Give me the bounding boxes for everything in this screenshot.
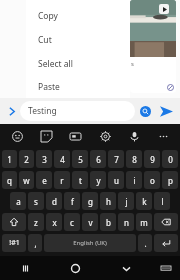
staticText: y bbox=[96, 175, 101, 186]
staticText: h bbox=[106, 196, 111, 207]
button[interactable]: Paste bbox=[26, 76, 130, 98]
button[interactable]: Home bbox=[50, 256, 101, 280]
button[interactable]: Copy bbox=[26, 4, 130, 28]
button[interactable]: b bbox=[100, 213, 116, 231]
staticText: , bbox=[34, 238, 37, 249]
button[interactable]: o bbox=[144, 171, 160, 189]
button[interactable]: Select all bbox=[26, 52, 130, 76]
staticText: v bbox=[88, 217, 93, 228]
staticText: s bbox=[34, 196, 38, 207]
button[interactable]: r bbox=[54, 171, 70, 189]
button[interactable]: a bbox=[10, 192, 26, 210]
button[interactable]: Cut bbox=[26, 28, 130, 52]
staticText: l bbox=[161, 196, 164, 207]
button[interactable]: s bbox=[28, 192, 44, 210]
button[interactable]: Expand toolbar bbox=[3, 103, 20, 120]
button[interactable]: Recents bbox=[0, 256, 50, 280]
button[interactable]: Settings bbox=[95, 126, 115, 146]
button[interactable]: Shift bbox=[2, 213, 26, 231]
button[interactable]: k bbox=[136, 192, 152, 210]
staticText: 2 bbox=[24, 154, 29, 165]
button[interactable]: Backspace bbox=[154, 213, 178, 231]
button[interactable]: 1 bbox=[2, 150, 17, 168]
staticText: 9 bbox=[150, 154, 155, 165]
button[interactable]: w bbox=[19, 171, 34, 189]
button[interactable]: j bbox=[118, 192, 134, 210]
staticText: Paste bbox=[38, 81, 60, 93]
button[interactable]: More options bbox=[153, 126, 173, 146]
button[interactable]: m bbox=[136, 213, 152, 231]
button[interactable]: v bbox=[82, 213, 98, 231]
button[interactable]: 4 bbox=[54, 150, 70, 168]
staticText: p bbox=[168, 175, 173, 186]
staticText: English (UK) bbox=[73, 239, 107, 247]
button[interactable]: 3 bbox=[36, 150, 52, 168]
button[interactable]: Send bbox=[155, 100, 177, 122]
staticText: 4 bbox=[60, 154, 65, 165]
button[interactable]: z bbox=[28, 213, 44, 231]
staticText: q bbox=[7, 175, 12, 186]
button[interactable]: h bbox=[100, 192, 116, 210]
staticText: f bbox=[71, 196, 74, 207]
staticText: Cut bbox=[38, 34, 52, 46]
button[interactable]: x bbox=[46, 213, 62, 231]
staticText: x bbox=[52, 217, 57, 228]
button[interactable]: s bbox=[130, 57, 176, 93]
button[interactable]: Hide keyboard bbox=[101, 256, 152, 280]
staticText: w bbox=[23, 175, 30, 186]
button[interactable]: 7 bbox=[108, 150, 124, 168]
staticText: 1 bbox=[7, 154, 12, 165]
staticText: z bbox=[34, 217, 38, 228]
button[interactable]: l bbox=[154, 192, 170, 210]
staticText: u bbox=[114, 175, 119, 186]
button[interactable]: g bbox=[82, 192, 98, 210]
button[interactable]: !#1 bbox=[2, 234, 26, 252]
button[interactable]: i bbox=[126, 171, 142, 189]
staticText: m bbox=[140, 217, 148, 228]
button[interactable]: Search bbox=[135, 101, 155, 121]
staticText: 8 bbox=[132, 154, 137, 165]
button[interactable]: d bbox=[46, 192, 62, 210]
button[interactable]: English (UK) bbox=[44, 234, 136, 252]
staticText: a bbox=[16, 196, 21, 207]
button[interactable]: q bbox=[2, 171, 17, 189]
staticText: c bbox=[70, 217, 74, 228]
button[interactable]: , bbox=[28, 234, 42, 252]
button[interactable]: 2 bbox=[19, 150, 34, 168]
staticText: Testing bbox=[28, 105, 57, 117]
button[interactable]: . bbox=[138, 234, 152, 252]
button[interactable]: Emoji bbox=[7, 126, 27, 146]
staticText: b bbox=[106, 217, 111, 228]
staticText: 6 bbox=[96, 154, 101, 165]
button[interactable]: 9 bbox=[144, 150, 160, 168]
button[interactable]: e bbox=[36, 171, 52, 189]
button[interactable]: Testing bbox=[20, 101, 135, 121]
button[interactable]: GIF bbox=[65, 126, 85, 146]
button[interactable]: Stickers bbox=[36, 126, 56, 146]
button[interactable]: Video attachment bbox=[130, 0, 176, 57]
button[interactable]: y bbox=[90, 171, 106, 189]
staticText: !#1 bbox=[9, 238, 20, 248]
staticText: g bbox=[88, 196, 93, 207]
button[interactable]: u bbox=[108, 171, 124, 189]
button[interactable]: n bbox=[118, 213, 134, 231]
button[interactable]: t bbox=[72, 171, 88, 189]
button[interactable]: Voice input bbox=[124, 126, 144, 146]
staticText: . bbox=[144, 238, 147, 249]
staticText: e bbox=[42, 175, 47, 186]
button[interactable]: Enter bbox=[154, 234, 178, 252]
button[interactable]: 6 bbox=[90, 150, 106, 168]
button[interactable]: f bbox=[64, 192, 80, 210]
staticText: t bbox=[79, 175, 82, 186]
button[interactable]: c bbox=[64, 213, 80, 231]
button[interactable]: 5 bbox=[72, 150, 88, 168]
button[interactable]: 0 bbox=[162, 150, 178, 168]
staticText: Copy bbox=[38, 10, 58, 22]
button[interactable]: 8 bbox=[126, 150, 142, 168]
staticText: 7 bbox=[114, 154, 119, 165]
button[interactable]: Switch keyboard bbox=[152, 256, 180, 280]
staticText: d bbox=[52, 196, 57, 207]
button[interactable]: p bbox=[162, 171, 178, 189]
staticText: j bbox=[125, 196, 128, 207]
staticText: s bbox=[131, 60, 134, 68]
